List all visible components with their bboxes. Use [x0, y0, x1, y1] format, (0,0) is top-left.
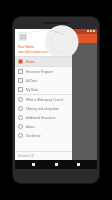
staticText: My Data [26, 88, 38, 92]
staticText: Recurrent Program [26, 70, 54, 74]
button[interactable]: Additional Resources [15, 113, 72, 122]
button[interactable]: Recurrent Program [15, 67, 72, 76]
staticText: Sharing and using data [26, 107, 59, 111]
staticText: Disclaimer [26, 134, 41, 138]
staticText: All Data [26, 79, 37, 83]
button[interactable]: Sharing and using data [15, 104, 72, 113]
staticText: What is Mahogany Council [26, 98, 64, 102]
staticText: About [26, 125, 35, 129]
staticText: Additional Resources [26, 116, 56, 120]
staticText: Version 1.0 [18, 154, 34, 158]
button[interactable]: Your Name [15, 29, 72, 56]
button[interactable]: Home [15, 57, 72, 66]
button[interactable]: Recents [74, 160, 83, 169]
button[interactable]: Home [52, 160, 61, 169]
staticText: name@example.com [18, 50, 48, 54]
button[interactable]: About [15, 122, 72, 131]
button[interactable]: What is Mahogany Council [15, 95, 72, 104]
button[interactable]: Disclaimer [15, 131, 72, 140]
staticText: Home [26, 60, 35, 64]
button[interactable]: My Data [15, 85, 72, 94]
staticText: Your Name [18, 45, 34, 49]
button[interactable]: Back [29, 160, 38, 169]
button[interactable]: All Data [15, 76, 72, 85]
